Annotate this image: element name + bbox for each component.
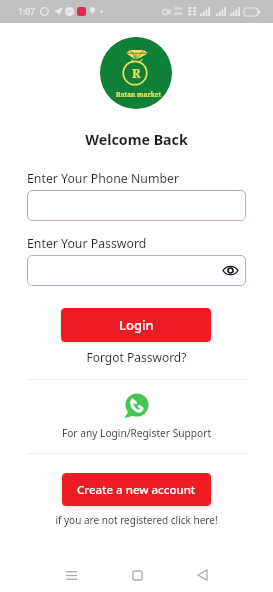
staticText: Welcome Back <box>0 130 273 149</box>
staticText: Enter Your Password <box>27 235 147 252</box>
staticText: Enter Your Phone Number <box>27 170 179 187</box>
staticText: 1:07 <box>18 6 35 18</box>
staticText: 10.6 KB/s <box>174 6 183 16</box>
staticText: For any Login/Register Support <box>0 426 273 440</box>
staticText: if you are not registered click here! <box>0 513 273 527</box>
staticText: R <box>132 65 141 81</box>
button[interactable]: Home <box>125 563 149 587</box>
staticText: Forgot Password? <box>0 349 273 365</box>
button[interactable] <box>27 190 246 221</box>
button[interactable]: Login <box>61 308 211 342</box>
button[interactable]: Recents <box>59 563 83 587</box>
button[interactable]: if you are not registered click here! <box>0 513 273 527</box>
staticText: Create a new account <box>77 482 196 498</box>
staticText: Login <box>119 316 154 334</box>
button[interactable]: Show password <box>27 255 246 286</box>
button[interactable]: Forgot Password? <box>0 349 273 365</box>
button[interactable]: WhatsApp support <box>124 393 149 418</box>
button[interactable]: Show password <box>222 262 239 279</box>
button[interactable]: Create a new account <box>62 473 211 506</box>
button[interactable]: Back <box>190 563 214 587</box>
staticText: Ratan market <box>116 90 162 99</box>
